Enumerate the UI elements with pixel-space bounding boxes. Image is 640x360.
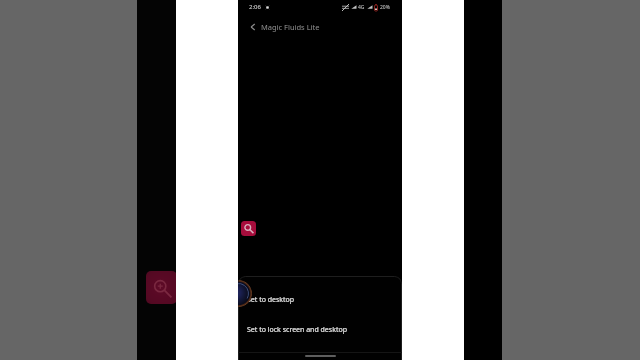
button[interactable]: Back [246,20,260,34]
staticText: 20% [380,4,390,11]
staticText: Magic Fluids Lite [261,22,320,32]
staticText: 2:06 [249,3,261,11]
staticText: Set to desktop [247,295,295,305]
button[interactable]: Set to lock screen and desktop [238,316,402,343]
button[interactable]: Set to desktop [238,286,402,313]
button[interactable]: Zoom in [241,221,256,236]
staticText: 4G [358,4,365,11]
staticText: Set to lock screen and desktop [247,325,347,335]
